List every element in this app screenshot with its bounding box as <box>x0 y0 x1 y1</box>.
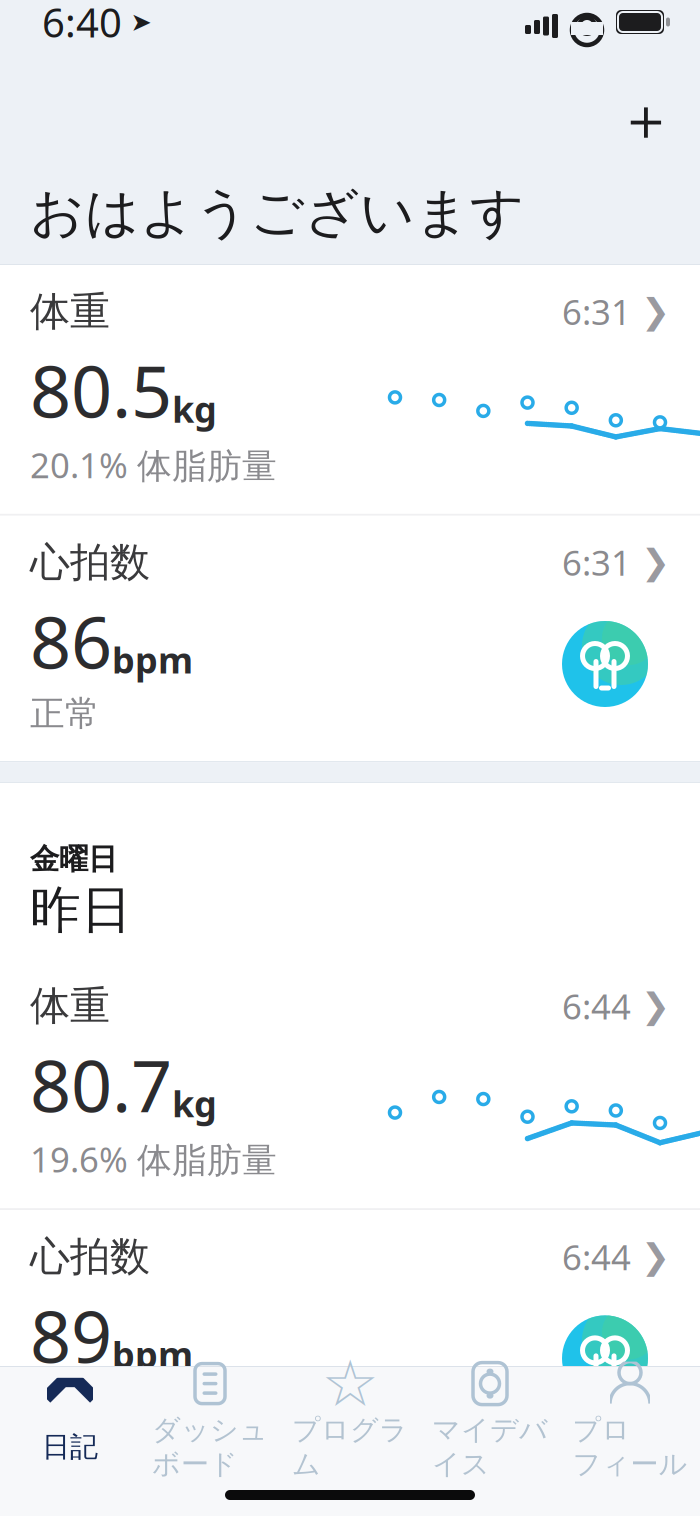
staticText: kg <box>172 385 217 433</box>
staticText: 80.5 <box>30 342 172 438</box>
staticText: 6:44 <box>562 983 631 1029</box>
staticText: 20.1% 体脂肪量 <box>30 442 277 488</box>
staticText: ❯ <box>641 986 670 1026</box>
button[interactable]: 体重 <box>0 959 700 1208</box>
staticText: ⌃ <box>16 1346 123 1491</box>
staticText: プロフィール <box>572 1413 687 1481</box>
button[interactable]: 体重 <box>0 265 700 514</box>
button[interactable]: マイデバイス <box>420 1351 560 1487</box>
staticText: 89 <box>30 1287 112 1383</box>
staticText: 6:31 <box>562 288 631 334</box>
staticText: 体重 <box>30 981 110 1030</box>
staticText: プログラム <box>292 1413 408 1481</box>
button[interactable]: 心拍数 <box>0 1210 700 1455</box>
staticText: ☆ <box>321 1347 378 1420</box>
staticText: ＋ <box>616 84 675 156</box>
staticText: bpm <box>112 1330 193 1378</box>
staticText: 心拍数 <box>30 1232 150 1281</box>
staticText: 86 <box>30 593 112 688</box>
staticText: 6:40 <box>42 0 122 48</box>
staticText: 正常 <box>30 692 100 735</box>
staticText: ➤ <box>130 8 151 36</box>
staticText: ダッシュボード <box>152 1413 268 1481</box>
staticText: 昨日 <box>30 879 132 941</box>
staticText: kg <box>172 1079 217 1127</box>
staticText: 19.6% 体脂肪量 <box>30 1136 277 1182</box>
staticText: ❯ <box>641 1237 670 1276</box>
staticText: 金曜日 <box>30 841 117 877</box>
staticText: おはようございます <box>30 180 525 245</box>
staticText: マイデバイス <box>432 1413 548 1481</box>
button[interactable]: Add entry <box>614 88 678 152</box>
staticText: 日記 <box>42 1430 98 1464</box>
staticText: 80.7 <box>30 1036 172 1132</box>
staticText: 心拍数 <box>30 538 150 587</box>
staticText: 6:44 <box>562 1234 631 1280</box>
staticText: bpm <box>112 636 193 683</box>
button[interactable]: プロフィール <box>560 1351 700 1487</box>
button[interactable]: 心拍数 <box>0 516 700 761</box>
staticText: 体重 <box>30 287 110 336</box>
staticText: 6:31 <box>562 539 631 585</box>
button[interactable]: ☆ <box>280 1351 420 1487</box>
button[interactable]: ダッシュボード <box>140 1351 280 1487</box>
button[interactable]: ⌃ <box>0 1368 140 1470</box>
staticText: 正常 <box>30 1387 100 1429</box>
staticText: ❯ <box>641 543 670 582</box>
staticText: ❯ <box>641 292 670 331</box>
